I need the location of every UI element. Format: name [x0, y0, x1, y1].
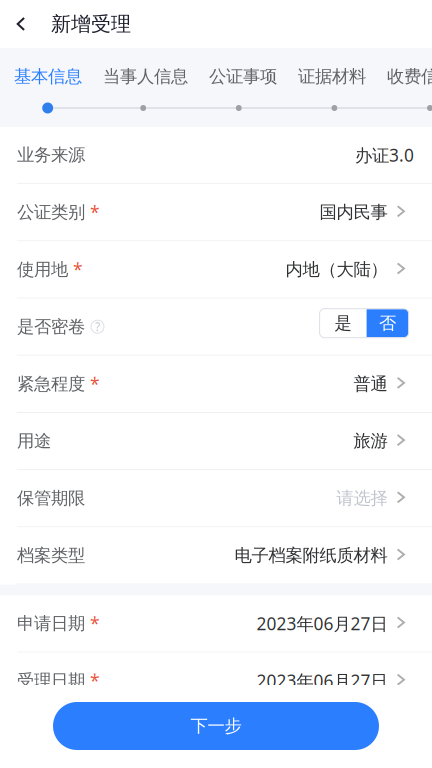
button[interactable]: 公证类别	[0, 184, 432, 241]
button[interactable]: Back	[6, 2, 36, 46]
staticText: 保管期限	[17, 488, 85, 509]
staticText: 2023年06月27日	[257, 669, 388, 692]
staticText: *	[90, 612, 100, 635]
button[interactable]: 公证事项	[209, 61, 277, 91]
staticText: 公证类别	[17, 202, 85, 223]
staticText: 业务来源	[17, 144, 85, 166]
staticText: 普通	[354, 373, 388, 395]
staticText: 旅游	[354, 430, 388, 452]
button[interactable]: 下一步	[53, 702, 379, 750]
staticText: 否	[379, 313, 396, 334]
staticText: 用途	[17, 430, 51, 452]
button[interactable]: 申请日期	[0, 595, 432, 653]
staticText: *	[90, 372, 100, 395]
staticText: *	[90, 201, 100, 224]
button[interactable]: 证据材料	[298, 61, 366, 91]
staticText: 是否密卷	[17, 316, 85, 337]
button[interactable]: 收费信息	[387, 61, 432, 91]
button[interactable]: 业务来源	[0, 127, 432, 184]
staticText: 使用地	[17, 259, 68, 280]
button[interactable]: 紧急程度	[0, 356, 432, 413]
staticText: 是	[335, 313, 352, 334]
staticText: *	[90, 669, 100, 692]
staticText: 下一步	[190, 715, 241, 737]
staticText: 国内民事	[320, 202, 388, 223]
staticText: *	[73, 258, 83, 281]
button[interactable]: 受理日期	[0, 653, 432, 710]
button[interactable]: 基本信息	[14, 61, 82, 91]
staticText: 档案类型	[17, 545, 85, 566]
staticText: 申请日期	[17, 613, 85, 634]
staticText: 证据材料	[298, 66, 366, 87]
button[interactable]: 档案类型	[0, 527, 432, 585]
staticText: ?	[95, 319, 100, 335]
staticText: 当事人信息	[103, 66, 188, 87]
staticText: 收费信息	[387, 66, 432, 87]
staticText: 电子档案附纸质材料	[235, 545, 388, 566]
staticText: 办证3.0	[355, 144, 414, 167]
button[interactable]: 使用地	[0, 241, 432, 299]
staticText: 公证事项	[209, 66, 277, 87]
staticText: 新增受理	[51, 12, 131, 36]
button[interactable]: 否	[367, 309, 409, 337]
staticText: 紧急程度	[17, 373, 85, 395]
staticText: 基本信息	[14, 66, 82, 87]
staticText: 受理日期	[17, 670, 85, 691]
staticText: 2023年06月27日	[257, 612, 388, 635]
button[interactable]: 当事人信息	[103, 61, 188, 91]
staticText: 请选择	[337, 488, 388, 509]
staticText: 内地（大陆）	[286, 259, 388, 280]
button[interactable]: 是	[320, 309, 367, 337]
button[interactable]: 保管期限	[0, 470, 432, 527]
button[interactable]: 用途	[0, 413, 432, 470]
